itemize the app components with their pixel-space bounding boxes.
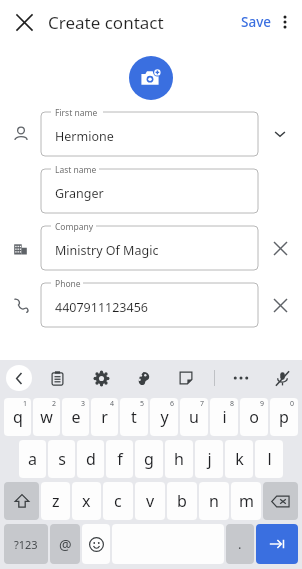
staticText: Phone [55,278,81,290]
staticText: ?123 [14,537,38,552]
button[interactable]: q [4,398,31,436]
button[interactable]: More options [272,9,298,35]
staticText: Save [241,13,272,31]
staticText: 5 [140,399,145,409]
button[interactable]: Company [41,226,258,270]
button[interactable]: x [72,482,101,520]
button[interactable]: e [62,398,89,436]
button[interactable]: Close [7,5,41,39]
staticText: Ministry Of Magic [55,242,159,259]
staticText: 8 [230,399,235,409]
staticText: w [40,406,53,428]
button[interactable]: Expand [258,112,302,156]
staticText: x [82,490,91,512]
button[interactable]: i [210,398,238,436]
button[interactable]: n [199,482,229,520]
staticText: i [222,406,227,428]
staticText: Granger [55,185,104,202]
button[interactable]: h [165,440,193,478]
button[interactable]: Next [256,524,298,564]
button[interactable]: Sticker [173,365,199,391]
staticText: c [114,490,122,512]
staticText: s [58,448,66,470]
button[interactable]: p [270,398,298,436]
button[interactable]: Settings [88,365,114,391]
staticText: 6 [170,399,175,409]
button[interactable]: j [195,440,223,478]
staticText: . [238,535,242,553]
staticText: l [267,448,272,470]
button[interactable]: k [225,440,253,478]
button[interactable]: u [180,398,208,436]
button[interactable]: ?123 [4,524,48,564]
staticText: Create contact [48,11,164,34]
button[interactable]: Mute microphone [269,365,295,391]
staticText: 4 [110,399,115,409]
button[interactable]: More [228,365,254,391]
button[interactable]: z [41,482,70,520]
staticText: m [239,490,254,512]
button[interactable]: Emoji [82,524,110,564]
button[interactable]: Shift [4,482,39,520]
staticText: k [235,448,244,470]
staticText: a [28,448,37,470]
staticText: g [144,448,154,470]
button[interactable]: m [231,482,261,520]
button[interactable]: d [77,440,104,478]
staticText: n [209,490,219,512]
staticText: Company [55,221,94,233]
button[interactable]: Save [241,13,272,31]
staticText: d [86,448,96,470]
button[interactable]: First name [41,112,258,156]
staticText: o [249,406,259,428]
button[interactable]: b [167,482,197,520]
staticText: h [174,448,184,470]
staticText: t [131,406,137,428]
button[interactable]: s [48,440,75,478]
staticText: f [117,448,123,470]
button[interactable]: f [106,440,133,478]
staticText: u [189,406,199,428]
staticText: j [207,448,212,470]
staticText: z [52,490,60,512]
staticText: 3 [81,399,86,409]
staticText: 0 [290,399,295,409]
button[interactable]: v [135,482,165,520]
staticText: p [279,406,289,428]
button[interactable]: r [91,398,118,436]
staticText: b [177,490,187,512]
staticText: Last name [55,164,97,176]
staticText: First name [55,107,98,119]
button[interactable]: Themes [130,365,156,391]
staticText: Hermione [55,128,114,145]
staticText: 9 [260,399,265,409]
button[interactable]: t [120,398,148,436]
staticText: q [13,406,23,428]
button[interactable]: g [135,440,163,478]
button[interactable]: c [103,482,133,520]
staticText: y [160,406,169,428]
button[interactable]: w [33,398,60,436]
button[interactable]: Clear [258,283,302,327]
staticText: v [146,490,155,512]
button[interactable]: Back [6,365,32,391]
button[interactable]: o [240,398,268,436]
staticText: @ [59,535,72,554]
button[interactable]: Backspace [263,482,298,520]
staticText: r [101,406,108,428]
button[interactable]: Add photo [129,56,173,100]
staticText: 7 [200,399,205,409]
button[interactable]: Last name [41,169,258,213]
button[interactable]: Phone [41,283,258,327]
staticText: e [71,406,81,428]
staticText: 2 [52,399,57,409]
button[interactable]: a [19,440,46,478]
button[interactable]: y [150,398,178,436]
button[interactable]: Clipboard [44,365,70,391]
staticText: 4407911123456 [55,299,148,316]
button[interactable]: . [226,524,254,564]
button[interactable]: @ [50,524,80,564]
button[interactable]: Clear [258,226,302,270]
button[interactable]: l [255,440,283,478]
